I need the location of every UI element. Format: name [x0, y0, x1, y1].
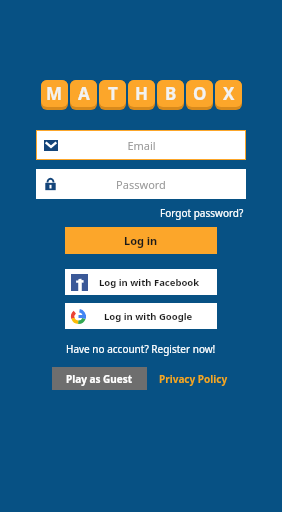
staticText: A: [78, 82, 90, 105]
button[interactable]: Forgot password?: [158, 204, 246, 222]
staticText: Password: [116, 177, 166, 192]
staticText: Log in: [124, 233, 158, 248]
staticText: Play as Guest: [66, 372, 133, 386]
staticText: Privacy Policy: [159, 372, 228, 386]
staticText: O: [193, 82, 207, 105]
staticText: B: [165, 82, 177, 105]
staticText: M: [46, 82, 63, 105]
staticText: Email: [127, 138, 156, 153]
button[interactable]: Have no account? Register now!: [64, 340, 218, 358]
staticText: Log in with Facebook: [99, 276, 200, 289]
staticText: T: [108, 82, 118, 105]
button[interactable]: Email: [36, 130, 246, 160]
staticText: Have no account? Register now!: [66, 342, 216, 356]
staticText: Log in with Google: [104, 310, 193, 323]
button[interactable]: Log in with Google: [65, 303, 217, 329]
button[interactable]: Log in: [65, 227, 217, 254]
button[interactable]: Play as Guest: [52, 367, 147, 390]
staticText: X: [223, 82, 235, 105]
button[interactable]: Log in with Facebook: [65, 269, 217, 295]
staticText: H: [135, 82, 149, 105]
staticText: Forgot password?: [160, 206, 244, 220]
button[interactable]: Password: [36, 169, 246, 199]
button[interactable]: Privacy Policy: [157, 370, 230, 388]
